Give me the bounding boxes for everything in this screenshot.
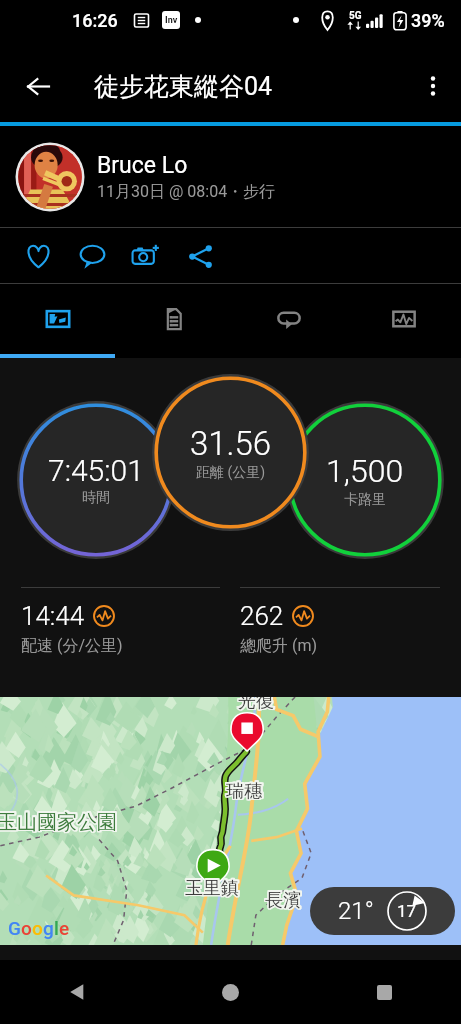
button[interactable]: Back [12,60,64,112]
staticText: 長濱 [265,889,301,912]
staticText: 徒步花東縱谷04 [94,71,273,102]
staticText: 瑞穗 [227,780,263,803]
staticText: 瑞穗 [225,781,261,804]
button[interactable]: More options [405,58,461,114]
staticText: 玉里鎮 [186,876,240,899]
staticText: 14:44 [21,601,85,631]
staticText: 17 [397,901,417,921]
button[interactable]: Share [173,229,227,283]
staticText: 玉里鎮 [186,877,240,900]
staticText: 瑞穗 [226,781,262,804]
staticText: 16:26 [72,10,118,31]
staticText: Inv [165,15,178,26]
staticText: o [21,917,32,939]
staticText: 玉山國家公園 [0,810,116,835]
staticText: e [59,917,70,939]
staticText: 長濱 [264,890,300,913]
staticText: 玉山國家公園 [0,809,116,834]
staticText: 玉山國家公園 [0,810,118,835]
staticText: 瑞穗 [227,779,263,802]
button[interactable]: Comment [65,229,119,283]
staticText: g [43,917,54,939]
staticText: 玉山國家公園 [0,809,117,834]
button[interactable]: Details [116,284,231,354]
staticText: 長濱 [264,888,300,911]
staticText: 玉里鎮 [184,877,238,900]
staticText: 長濱 [264,889,300,912]
button[interactable]: Recent apps [360,968,408,1016]
staticText: 瑞穗 [227,781,263,804]
button[interactable]: Home [206,968,254,1016]
staticText: 光復 [238,697,274,714]
staticText: 玉山國家公園 [0,811,118,836]
staticText: 光復 [239,697,275,714]
staticText: 長濱 [265,890,301,913]
button[interactable]: Laps [231,284,346,354]
staticText: 玉里鎮 [184,878,238,901]
staticText: 玉里鎮 [186,878,240,901]
staticText: 瑞穗 [225,779,261,802]
staticText: 光復 [237,697,273,712]
button[interactable]: Bruce Lo [0,126,461,227]
staticText: 光復 [238,697,274,713]
staticText: 光復 [239,697,275,712]
button[interactable]: Add photo [119,229,173,283]
staticText: 長濱 [266,890,302,913]
staticText: Bruce Lo [97,152,188,179]
staticText: 玉里鎮 [184,876,238,899]
staticText: 長濱 [266,888,302,911]
staticText: 玉山國家公園 [0,810,117,835]
staticText: 5G [349,10,362,22]
staticText: 距離 (公里) [196,464,266,482]
staticText: 時間 [82,489,110,507]
staticText: 瑞穗 [226,780,262,803]
button[interactable]: Charts [346,284,461,354]
button[interactable]: Map [0,284,116,354]
staticText: 光復 [239,697,275,713]
staticText: 長濱 [265,888,301,911]
button[interactable]: Back [53,968,101,1016]
staticText: o [32,917,43,939]
staticText: 262 [240,601,284,631]
staticText: 卡路里 [344,491,386,509]
staticText: 光復 [237,697,273,713]
staticText: 瑞穗 [225,780,261,803]
staticText: 光復 [237,697,273,714]
staticText: 瑞穗 [226,779,262,802]
staticText: 11月30日 @ 08:04・步行 [97,182,276,202]
staticText: 長濱 [266,889,302,912]
staticText: 玉山國家公園 [0,811,116,836]
staticText: 玉里鎮 [185,878,239,901]
staticText: 1,500 [326,452,404,490]
staticText: 39% [411,10,445,31]
staticText: 21° [338,897,374,925]
staticText: 玉山國家公園 [0,811,117,836]
staticText: 7:45:01 [48,453,144,488]
staticText: 31.56 [190,424,272,463]
staticText: G [8,917,21,939]
staticText: 玉山國家公園 [0,809,118,834]
staticText: 玉里鎮 [185,876,239,899]
staticText: l [54,917,59,939]
button[interactable]: 21° [310,887,455,935]
staticText: 總爬升 (m) [240,636,318,656]
staticText: 玉里鎮 [185,877,239,900]
staticText: 配速 (分/公里) [21,636,123,656]
button[interactable]: Like [11,229,65,283]
staticText: 光復 [238,697,274,712]
